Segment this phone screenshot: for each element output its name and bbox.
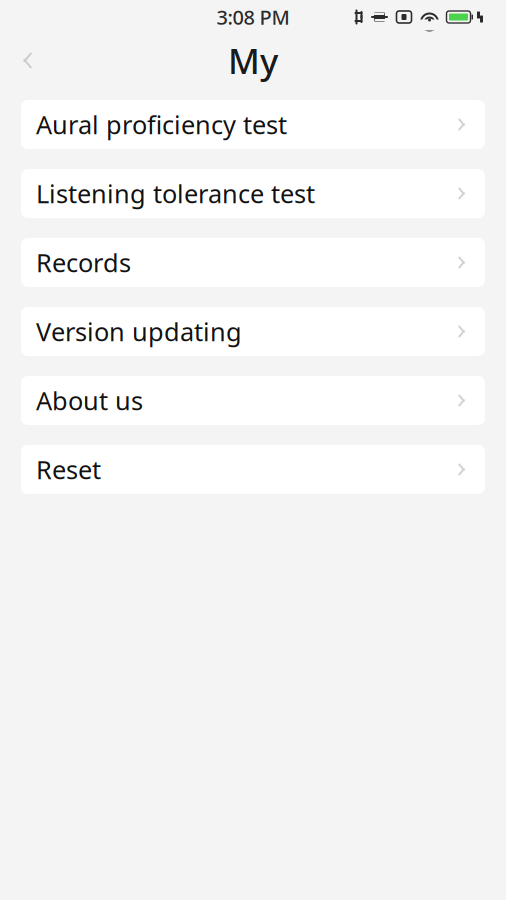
button[interactable]: Aural proficiency test: [21, 100, 485, 149]
button[interactable]: Version updating: [21, 307, 485, 356]
button[interactable]: Listening tolerance test: [21, 169, 485, 218]
staticText: Records: [36, 246, 131, 279]
button[interactable]: Reset: [21, 445, 485, 494]
button[interactable]: About us: [21, 376, 485, 425]
staticText: Version updating: [36, 315, 242, 348]
button[interactable]: Records: [21, 238, 485, 287]
staticText: Aural proficiency test: [36, 108, 287, 141]
staticText: 3:08 PM: [216, 4, 289, 30]
staticText: My: [228, 37, 278, 83]
button[interactable]: Back: [0, 38, 50, 82]
staticText: Reset: [36, 453, 101, 486]
staticText: Listening tolerance test: [36, 177, 315, 210]
staticText: About us: [36, 384, 143, 417]
